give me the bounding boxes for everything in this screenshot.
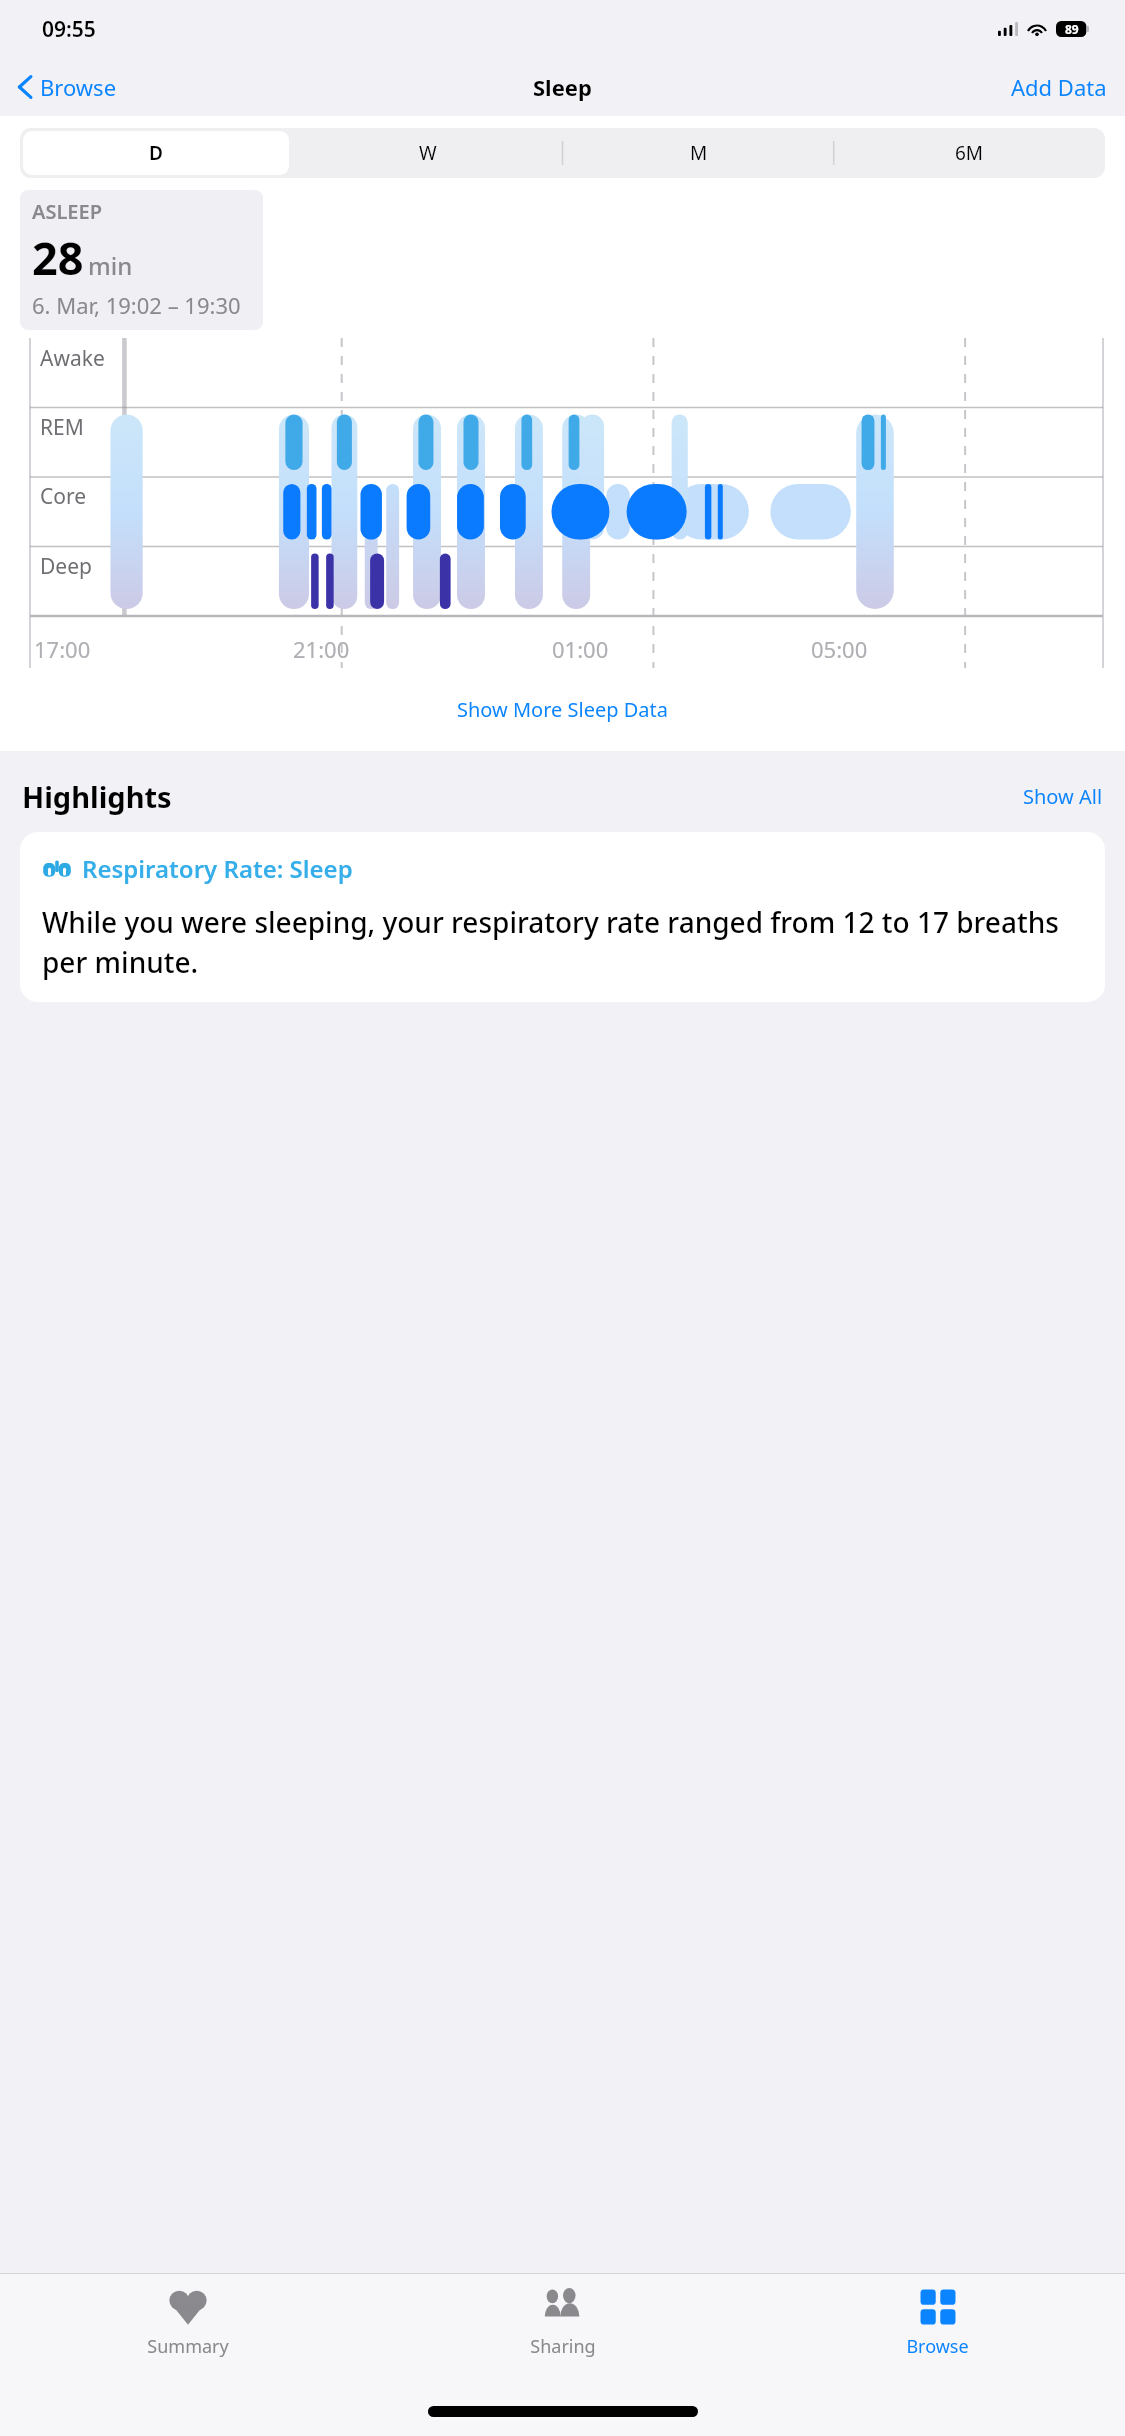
staticText: Show More Sleep Data: [457, 696, 668, 723]
staticText: 05:00: [811, 634, 868, 664]
staticText: Deep: [40, 552, 92, 581]
staticText: Sharing: [530, 2334, 596, 2359]
button[interactable]: W: [295, 131, 560, 175]
staticText: 6. Mar, 19:02 – 19:30: [32, 290, 241, 320]
staticText: 21:00: [293, 634, 350, 664]
staticText: ASLEEP: [32, 198, 102, 225]
staticText: Show All: [1023, 783, 1103, 810]
staticText: 6M: [955, 140, 984, 166]
staticText: M: [690, 140, 708, 166]
staticText: Awake: [40, 344, 105, 373]
button[interactable]: D: [23, 131, 289, 175]
staticText: Respiratory Rate: Sleep: [82, 852, 353, 885]
staticText: 17:00: [34, 634, 91, 664]
staticText: While you were sleeping, your respirator…: [42, 903, 1083, 982]
button[interactable]: Add Data: [993, 66, 1125, 108]
button[interactable]: Show All: [1023, 783, 1103, 810]
staticText: Add Data: [1011, 72, 1107, 102]
staticText: min: [88, 249, 133, 282]
button[interactable]: Sharing: [375, 2274, 750, 2392]
staticText: REM: [40, 413, 84, 442]
staticText: Sleep: [533, 72, 592, 102]
staticText: 89: [1065, 21, 1079, 37]
staticText: Summary: [147, 2334, 229, 2359]
staticText: 28: [32, 227, 84, 288]
staticText: W: [419, 140, 437, 166]
button[interactable]: 6M: [837, 131, 1102, 175]
button[interactable]: Summary: [0, 2274, 375, 2392]
staticText: 01:00: [552, 634, 609, 664]
button[interactable]: Browse: [750, 2274, 1125, 2392]
button[interactable]: Show More Sleep Data: [0, 686, 1125, 733]
staticText: D: [149, 140, 163, 166]
button[interactable]: M: [566, 131, 831, 175]
staticText: Core: [40, 482, 87, 511]
staticText: Highlights: [22, 777, 172, 816]
button[interactable]: Respiratory Rate: Sleep: [20, 832, 1105, 1002]
staticText: Browse: [40, 72, 117, 102]
staticText: 09:55: [42, 15, 96, 44]
staticText: Browse: [906, 2334, 969, 2359]
button[interactable]: Browse: [0, 66, 127, 108]
